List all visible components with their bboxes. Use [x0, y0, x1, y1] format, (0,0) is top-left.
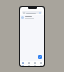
button[interactable]: Meet: [32, 61, 38, 66]
button[interactable]: Compose: [38, 55, 42, 59]
button[interactable]: Home: [20, 61, 26, 66]
button[interactable]: Menu: [22, 11, 42, 14]
button[interactable]: [20, 15, 44, 20]
button[interactable]: Rooms: [38, 61, 44, 66]
button[interactable]: Chat: [26, 61, 32, 66]
